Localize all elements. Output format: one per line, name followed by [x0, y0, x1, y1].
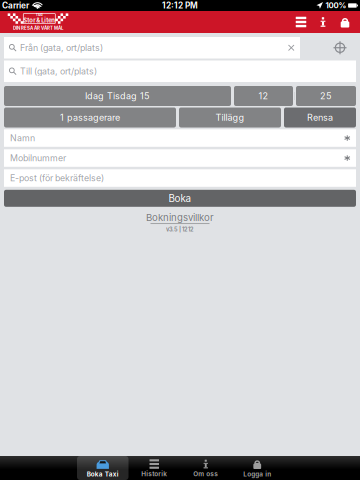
button[interactable]: 1 passagerare — [4, 107, 176, 127]
button[interactable]: Tillägg — [179, 107, 281, 127]
button[interactable]: Use current location — [327, 37, 353, 58]
staticText: Från (gata, ort/plats) — [20, 42, 103, 53]
button[interactable]: Boka — [4, 190, 356, 207]
staticText: Om oss — [193, 470, 218, 478]
button[interactable]: Information — [312, 11, 334, 32]
staticText: E-post (för bekräftelse) — [10, 173, 104, 183]
staticText: Stor & Liten — [23, 17, 55, 24]
button[interactable]: Historik — [128, 456, 180, 480]
staticText: Idag Tisdag 15 — [85, 90, 150, 101]
button[interactable]: Logga in — [231, 456, 283, 480]
staticText: TAXI — [36, 13, 43, 17]
staticText: Historik — [141, 470, 167, 478]
staticText: Carrier — [2, 0, 29, 10]
button[interactable]: Log in — [334, 11, 356, 32]
button[interactable]: Rensa — [284, 107, 356, 127]
staticText: Mobilnummer — [10, 153, 66, 163]
staticText: 12 — [258, 90, 268, 101]
staticText: 25 — [320, 90, 332, 101]
staticText: 100% — [325, 1, 346, 10]
staticText: Boka Taxi — [87, 470, 119, 478]
staticText: Bokningsvillkor — [146, 212, 214, 223]
button[interactable]: Boka Taxi — [77, 456, 128, 480]
staticText: Namn — [10, 133, 35, 143]
button[interactable]: Menu — [290, 11, 312, 32]
staticText: Till (gata, ort/plats) — [20, 66, 97, 76]
button[interactable]: Bokningsvillkor — [146, 212, 214, 224]
staticText: 1 passagerare — [60, 112, 120, 123]
staticText: Logga in — [243, 470, 271, 478]
staticText: v3.5 | 1212 — [166, 226, 194, 233]
staticText: DIN RESA ÄR VÅRT MÅL — [13, 26, 63, 31]
staticText: Tillägg — [215, 112, 244, 123]
button[interactable]: Om oss — [180, 456, 231, 480]
staticText: 12:12 PM — [162, 0, 198, 10]
button[interactable]: 12 — [234, 86, 293, 106]
button[interactable]: Idag Tisdag 15 — [4, 86, 231, 106]
button[interactable]: 25 — [296, 86, 356, 106]
staticText: Boka — [168, 192, 191, 204]
staticText: Rensa — [307, 112, 333, 123]
